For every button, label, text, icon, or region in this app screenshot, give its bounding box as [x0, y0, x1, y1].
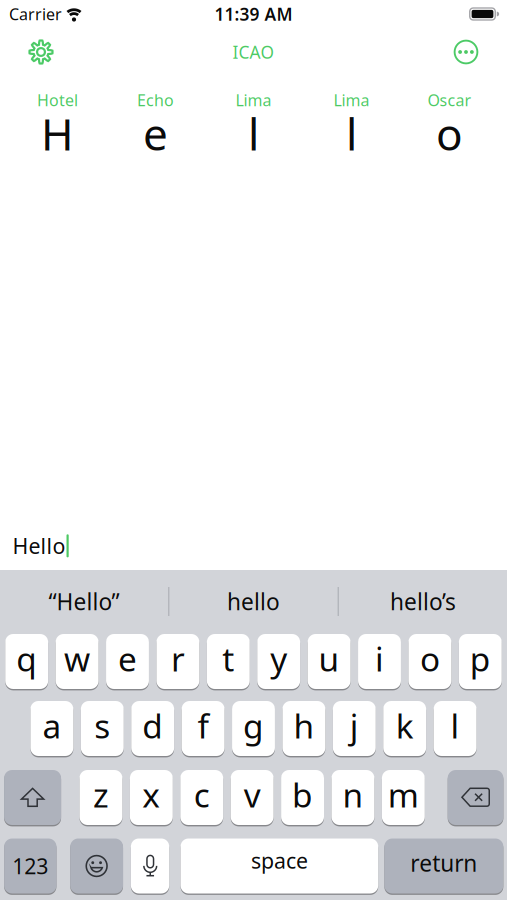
button[interactable]: w	[56, 634, 99, 689]
button[interactable]: Hello	[0, 532, 507, 570]
staticText: q	[16, 636, 37, 681]
staticText: h	[293, 703, 314, 748]
staticText: g	[243, 703, 264, 748]
button[interactable]: z	[79, 770, 122, 825]
staticText: Hello	[12, 532, 65, 560]
button[interactable]	[0, 39, 54, 65]
staticText: hello’s	[390, 586, 456, 616]
button[interactable]: hello’s	[339, 570, 507, 633]
staticText: y	[270, 636, 287, 681]
button[interactable]: space	[180, 838, 378, 893]
staticText: Echo	[137, 89, 174, 111]
button[interactable]: b	[281, 770, 324, 825]
staticText: 11:39 AM	[214, 2, 292, 25]
button[interactable]: i	[358, 634, 401, 689]
staticText: r	[171, 636, 185, 681]
staticText: hello	[227, 586, 280, 616]
button[interactable]: r	[156, 634, 199, 689]
button[interactable]: a	[30, 701, 73, 756]
staticText: f	[198, 703, 209, 748]
staticText: k	[396, 703, 414, 748]
button[interactable]	[4, 770, 61, 825]
button[interactable]: u	[308, 634, 351, 689]
staticText: p	[470, 636, 491, 681]
button[interactable]: 123	[4, 838, 56, 893]
staticText: v	[244, 772, 261, 817]
staticText: j	[350, 703, 359, 748]
button[interactable]: e	[106, 634, 149, 689]
staticText: w	[64, 636, 90, 681]
button[interactable]: k	[383, 701, 426, 756]
staticText: Carrier	[9, 3, 62, 25]
staticText: a	[42, 703, 61, 748]
button[interactable]: v	[231, 770, 274, 825]
button[interactable]: “Hello”	[0, 570, 168, 633]
button[interactable]: return	[384, 838, 503, 893]
staticText: i	[375, 636, 384, 681]
button[interactable]: f	[182, 701, 225, 756]
button[interactable]: h	[282, 701, 325, 756]
staticText: “Hello”	[48, 586, 119, 616]
staticText: s	[94, 703, 110, 748]
staticText: c	[194, 772, 210, 817]
staticText: m	[388, 772, 419, 817]
button[interactable]	[131, 838, 169, 893]
staticText: d	[142, 703, 163, 748]
staticText: l	[248, 104, 259, 163]
staticText: space	[251, 846, 308, 875]
staticText: Lima	[333, 89, 369, 111]
staticText: n	[342, 772, 363, 817]
button[interactable]: n	[331, 770, 374, 825]
button[interactable]	[70, 838, 123, 893]
button[interactable]: c	[180, 770, 223, 825]
staticText: l	[346, 104, 357, 163]
staticText: t	[222, 636, 234, 681]
button[interactable]: p	[459, 634, 502, 689]
button[interactable]: s	[81, 701, 124, 756]
staticText: z	[93, 772, 109, 817]
staticText: Lima	[235, 89, 271, 111]
button[interactable]: x	[130, 770, 173, 825]
staticText: x	[142, 772, 160, 817]
staticText: ICAO	[232, 40, 274, 63]
button[interactable]: j	[333, 701, 376, 756]
staticText: Oscar	[427, 89, 471, 111]
staticText: l	[451, 703, 460, 748]
button[interactable]: t	[207, 634, 250, 689]
button[interactable]: q	[5, 634, 48, 689]
button[interactable]: hello	[169, 570, 338, 633]
staticText: o	[436, 104, 463, 163]
staticText: o	[420, 636, 440, 681]
staticText: u	[319, 636, 340, 681]
button[interactable]: o	[408, 634, 451, 689]
staticText: e	[118, 636, 137, 681]
button[interactable]: m	[382, 770, 425, 825]
button[interactable]: y	[257, 634, 300, 689]
staticText: H	[41, 104, 74, 163]
button[interactable]: l	[434, 701, 476, 756]
button[interactable]: g	[232, 701, 275, 756]
staticText: b	[292, 772, 313, 817]
staticText: e	[143, 104, 168, 163]
staticText: Hotel	[37, 89, 78, 111]
staticText: 123	[12, 852, 48, 880]
button[interactable]	[453, 39, 507, 65]
button[interactable]	[448, 770, 503, 825]
staticText: return	[410, 848, 477, 878]
button[interactable]: d	[131, 701, 174, 756]
